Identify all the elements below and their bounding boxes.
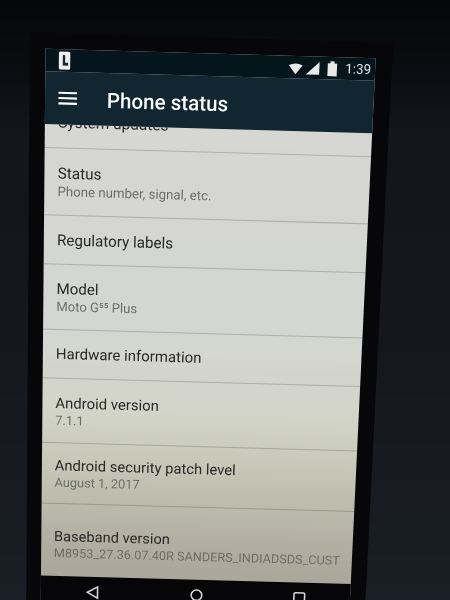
- staticText: Phone number, signal, etc.: [57, 184, 212, 203]
- button[interactable]: Android version: [42, 378, 360, 451]
- button[interactable]: System updates: [45, 124, 372, 157]
- staticText: M8953_27.36.07.40R SANDERS_INDIADSDS_CUS…: [54, 546, 341, 568]
- button[interactable]: Hardware information: [43, 330, 362, 387]
- button[interactable]: Status: [44, 148, 371, 224]
- staticText: Android security patch level: [55, 457, 236, 479]
- staticText: Status: [58, 164, 102, 184]
- staticText: Android version: [55, 394, 160, 415]
- staticText: System updates: [58, 124, 169, 135]
- staticText: Hardware information: [56, 345, 202, 367]
- staticText: 7.1.1: [55, 413, 84, 428]
- button[interactable]: Regulatory labels: [44, 215, 368, 273]
- staticText: Phone status: [107, 88, 229, 115]
- button[interactable]: Home: [144, 578, 248, 600]
- button[interactable]: Model: [43, 264, 365, 338]
- staticText: August 1, 2017: [54, 475, 140, 492]
- button[interactable]: Recent apps: [247, 581, 351, 600]
- staticText: Moto G⁵⁵ Plus: [56, 299, 138, 316]
- button[interactable]: Android security patch level: [42, 443, 357, 512]
- button[interactable]: Menu: [45, 71, 91, 125]
- button[interactable]: Back: [41, 575, 145, 600]
- staticText: Regulatory labels: [57, 231, 174, 253]
- staticText: Baseband version: [54, 528, 170, 548]
- button[interactable]: Baseband version: [41, 503, 354, 584]
- staticText: Model: [56, 280, 99, 299]
- staticText: 1:39: [345, 61, 372, 77]
